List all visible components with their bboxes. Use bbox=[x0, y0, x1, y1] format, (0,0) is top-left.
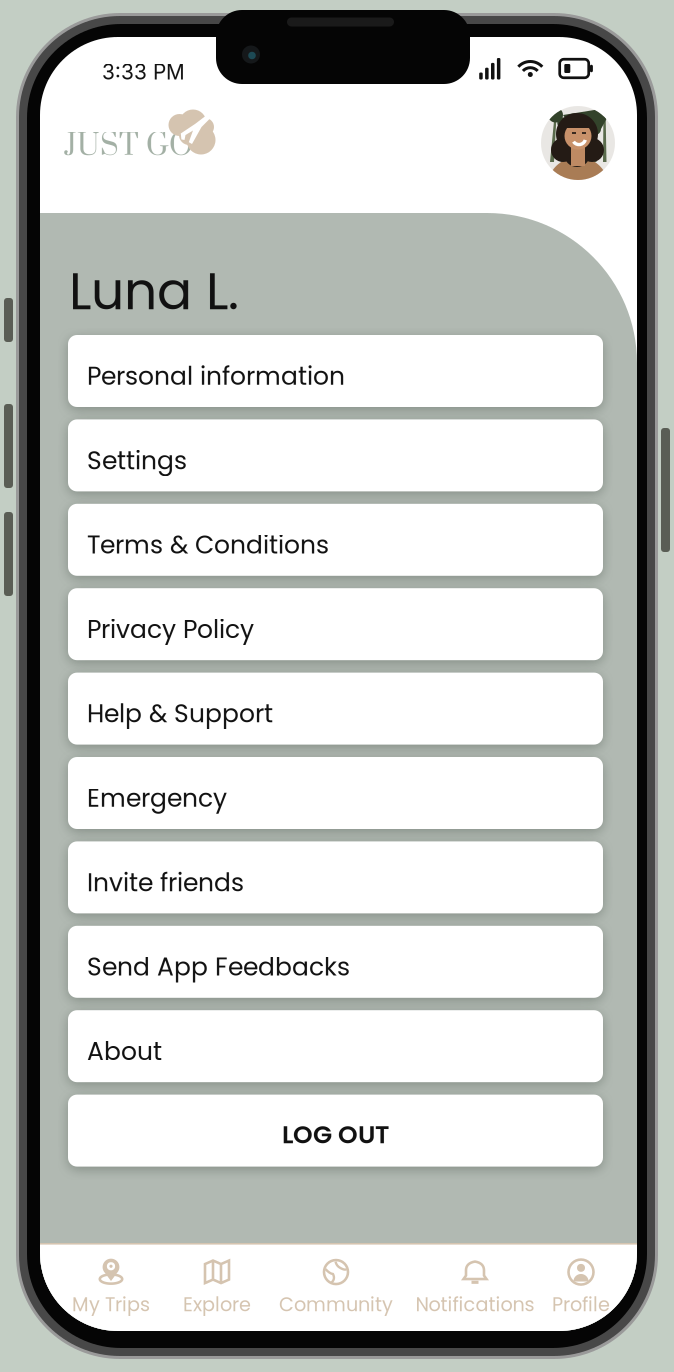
button[interactable]: Terms & Conditions bbox=[68, 504, 603, 576]
button[interactable]: Community bbox=[266, 1257, 406, 1319]
button[interactable]: Help & Support bbox=[68, 673, 603, 745]
button[interactable]: Invite friends bbox=[68, 841, 603, 913]
button[interactable]: My Trips bbox=[41, 1257, 181, 1319]
staticText: Invite friends bbox=[87, 865, 244, 900]
staticText: Personal information bbox=[87, 358, 345, 393]
staticText: Notifications bbox=[415, 1291, 534, 1318]
staticText: Terms & Conditions bbox=[87, 527, 329, 562]
button[interactable]: Emergency bbox=[68, 757, 603, 829]
button[interactable]: Settings bbox=[68, 419, 603, 491]
staticText: Community bbox=[279, 1291, 393, 1318]
staticText: LOG OUT bbox=[282, 1117, 389, 1152]
staticText: Profile bbox=[552, 1291, 610, 1318]
button[interactable]: Personal information bbox=[68, 335, 603, 407]
button[interactable]: Profile bbox=[511, 1257, 651, 1319]
button[interactable]: LOG OUT bbox=[68, 1095, 603, 1167]
staticText: About bbox=[87, 1034, 162, 1069]
button[interactable]: Notifications bbox=[405, 1257, 545, 1319]
staticText: Luna L. bbox=[69, 255, 239, 327]
staticText: My Trips bbox=[72, 1291, 150, 1318]
button[interactable]: Profile photo bbox=[541, 88, 615, 198]
button[interactable]: About bbox=[68, 1010, 603, 1082]
staticText: JUST GO bbox=[64, 127, 193, 165]
staticText: Emergency bbox=[87, 780, 227, 815]
staticText: 3:33 PM bbox=[102, 59, 185, 85]
button[interactable]: Privacy Policy bbox=[68, 588, 603, 660]
staticText: Send App Feedbacks bbox=[87, 949, 350, 984]
button[interactable]: Send App Feedbacks bbox=[68, 926, 603, 998]
button[interactable]: Explore bbox=[147, 1257, 287, 1319]
staticText: Help & Support bbox=[87, 696, 273, 731]
staticText: Privacy Policy bbox=[87, 612, 254, 647]
staticText: Explore bbox=[183, 1291, 251, 1318]
staticText: Settings bbox=[87, 443, 187, 478]
